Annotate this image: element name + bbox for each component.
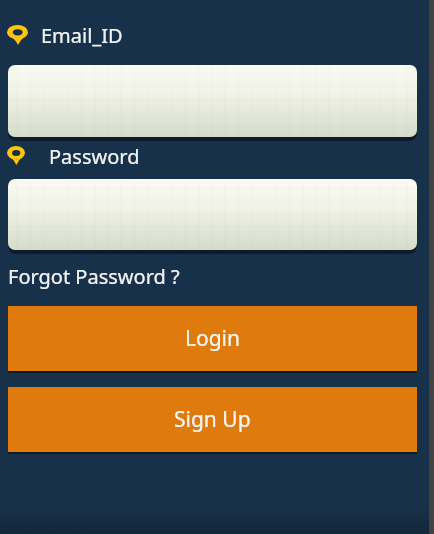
- button[interactable]: [8, 179, 417, 250]
- button[interactable]: Sign Up: [8, 387, 417, 452]
- staticText: Sign Up: [174, 405, 251, 434]
- button[interactable]: [8, 65, 417, 137]
- button[interactable]: Login: [8, 306, 417, 371]
- staticText: Email_ID: [41, 22, 123, 49]
- button[interactable]: Forgot Password ?: [8, 263, 180, 290]
- staticText: Password: [49, 143, 140, 170]
- staticText: Login: [185, 324, 241, 353]
